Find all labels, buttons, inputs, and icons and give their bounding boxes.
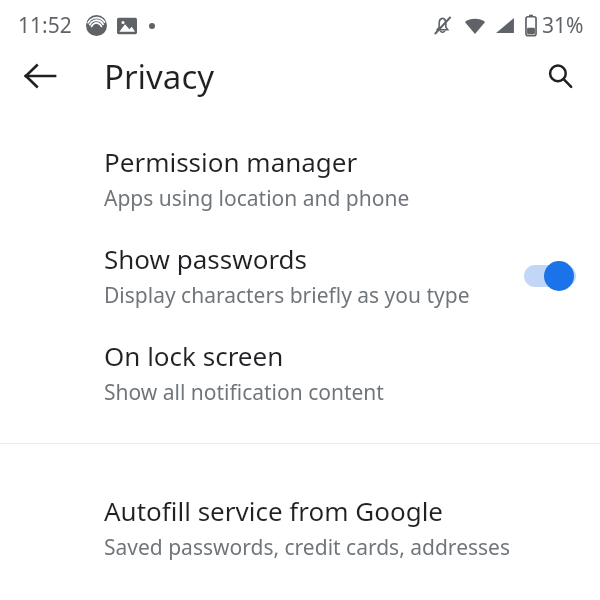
staticText: Display characters briefly as you type — [104, 281, 470, 310]
staticText: Privacy — [104, 54, 215, 99]
staticText: Saved passwords, credit cards, addresses — [104, 533, 510, 562]
button[interactable]: Show passwords — [0, 241, 600, 310]
staticText: On lock screen — [104, 338, 284, 373]
button[interactable]: Permission manager — [0, 144, 600, 213]
staticText: Show all notification content — [104, 378, 384, 407]
staticText: Apps using location and phone — [104, 184, 410, 213]
staticText: 11:52 — [18, 11, 72, 40]
staticText: Show passwords — [104, 241, 308, 276]
button[interactable]: Search — [534, 50, 586, 102]
button[interactable]: Back — [12, 50, 68, 102]
button[interactable]: On lock screen — [0, 338, 600, 407]
button[interactable]: Autofill service from Google — [0, 493, 600, 562]
staticText: 31% — [542, 11, 584, 40]
staticText: Autofill service from Google — [104, 493, 444, 528]
button[interactable]: Show passwords toggle — [522, 258, 578, 294]
staticText: Permission manager — [104, 144, 358, 179]
